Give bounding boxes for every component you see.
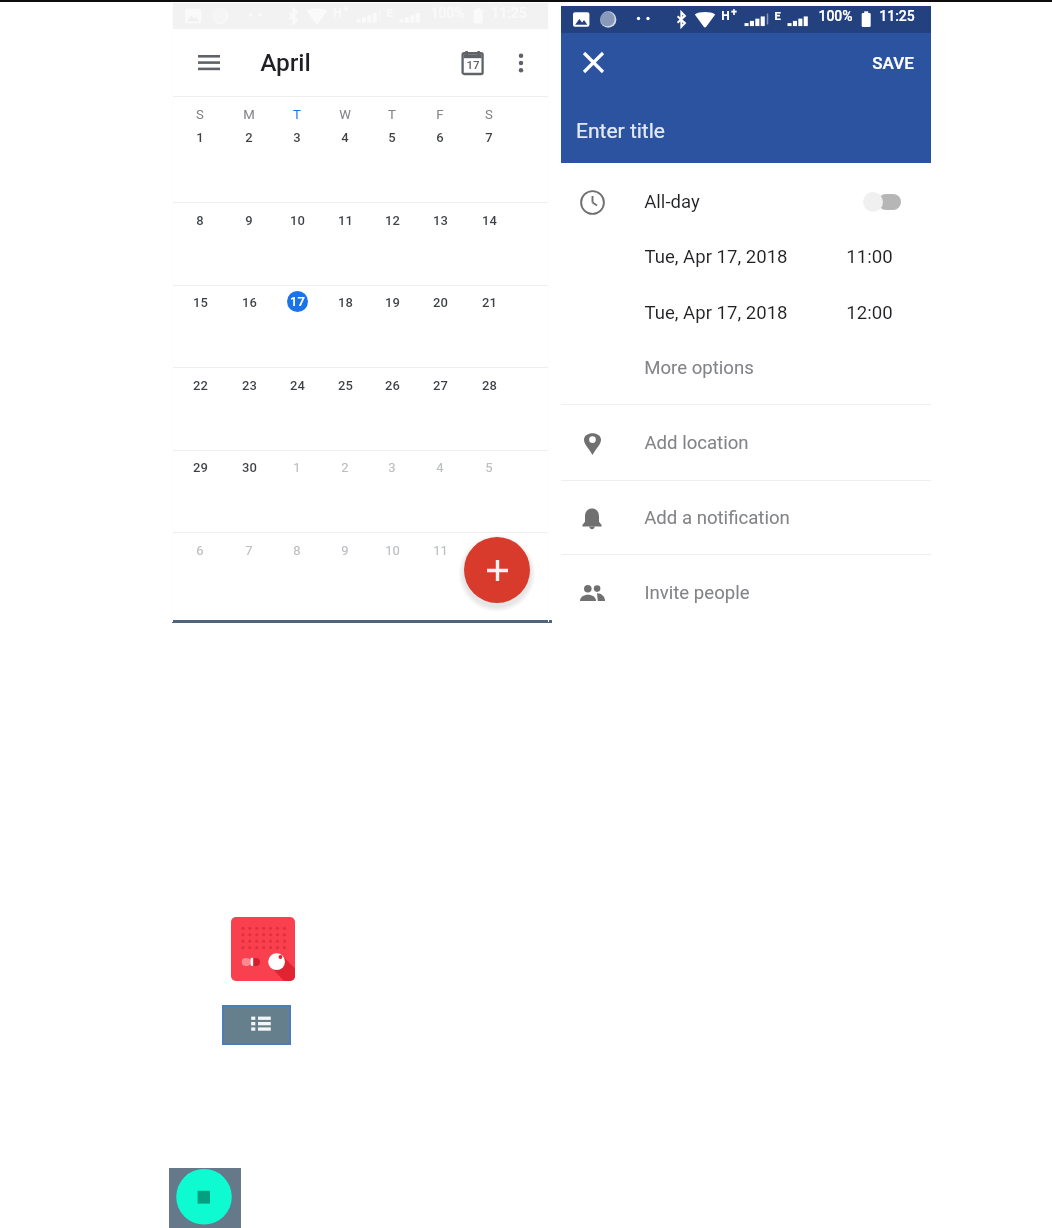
button[interactable]: 30 <box>225 460 273 475</box>
button[interactable]: 6 <box>176 543 224 558</box>
button[interactable]: 4 <box>416 460 464 475</box>
staticText: 7 <box>485 130 493 145</box>
button[interactable]: 21 <box>465 295 513 310</box>
button[interactable]: 18 <box>321 295 369 310</box>
staticText: T <box>293 107 301 122</box>
button[interactable]: 1 <box>273 460 321 475</box>
button[interactable]: 27 <box>416 378 464 393</box>
button[interactable]: SAVE <box>872 53 914 73</box>
button[interactable]: 19 <box>368 295 416 310</box>
staticText: Add location <box>644 432 749 454</box>
button[interactable]: List <box>222 1005 291 1045</box>
staticText: 22 <box>193 378 208 393</box>
button[interactable]: 5 <box>368 130 416 145</box>
staticText: 12:00 <box>846 302 893 324</box>
staticText: H <box>721 9 730 23</box>
button[interactable]: 14 <box>465 213 513 228</box>
staticText: H <box>333 6 342 20</box>
staticText: 5 <box>388 130 396 145</box>
staticText: 4 <box>436 460 444 475</box>
button[interactable]: 3 <box>368 460 416 475</box>
button[interactable]: 4 <box>321 130 369 145</box>
button[interactable]: 8 <box>176 213 224 228</box>
staticText: 16 <box>242 295 257 310</box>
button[interactable]: 16 <box>225 295 273 310</box>
button[interactable]: 24 <box>273 378 321 393</box>
staticText: 3 <box>293 130 301 145</box>
button[interactable]: 11 <box>321 213 369 228</box>
staticText: 1 <box>196 130 204 145</box>
staticText: 29 <box>193 460 208 475</box>
staticText: 18 <box>338 295 353 310</box>
staticText: 23 <box>242 378 257 393</box>
button[interactable]: 23 <box>225 378 273 393</box>
button[interactable]: 12 <box>368 213 416 228</box>
button[interactable]: Close <box>570 39 616 85</box>
button[interactable]: Go to today <box>452 42 494 84</box>
staticText: 6 <box>436 130 444 145</box>
button[interactable]: 7 <box>465 130 513 145</box>
staticText: Tue, Apr 17, 2018 <box>644 246 788 268</box>
button[interactable]: 20 <box>416 295 464 310</box>
staticText: 27 <box>433 378 448 393</box>
button[interactable]: Tue, Apr 17, 2018 <box>561 232 931 282</box>
staticText: 12 <box>385 213 400 228</box>
staticText: 1 <box>293 460 301 475</box>
button[interactable]: 28 <box>465 378 513 393</box>
staticText: 28 <box>482 378 497 393</box>
button[interactable]: 1 <box>176 130 224 145</box>
button[interactable]: Tue, Apr 17, 2018 <box>561 285 931 341</box>
button[interactable]: More options <box>561 341 931 395</box>
staticText: Tue, Apr 17, 2018 <box>644 302 788 324</box>
button[interactable]: App icon <box>231 917 295 981</box>
button[interactable]: 15 <box>176 295 224 310</box>
staticText: All-day <box>644 191 700 213</box>
button[interactable]: Add a notification <box>561 481 931 554</box>
button[interactable]: Add location <box>561 405 931 480</box>
staticText: 11:00 <box>846 246 893 268</box>
button[interactable]: 29 <box>176 460 224 475</box>
button[interactable]: 6 <box>416 130 464 145</box>
button[interactable]: More options <box>500 42 542 84</box>
button[interactable]: Invite people <box>561 555 931 631</box>
staticText: 9 <box>341 543 349 558</box>
staticText: M <box>243 107 255 122</box>
button[interactable]: 9 <box>321 543 369 558</box>
button[interactable]: 17 <box>287 291 308 312</box>
button[interactable]: Enter title <box>576 119 665 144</box>
button[interactable]: 10 <box>273 213 321 228</box>
button[interactable]: 8 <box>273 543 321 558</box>
staticText: 2 <box>341 460 349 475</box>
button[interactable]: All-day <box>561 172 931 232</box>
staticText: 19 <box>385 295 400 310</box>
button[interactable]: 10 <box>368 543 416 558</box>
button[interactable]: 2 <box>225 130 273 145</box>
button[interactable]: 5 <box>465 460 513 475</box>
staticText: 10 <box>385 543 400 558</box>
staticText: 20 <box>433 295 448 310</box>
button[interactable]: 26 <box>368 378 416 393</box>
button[interactable]: 9 <box>225 213 273 228</box>
staticText: 11 <box>433 543 448 558</box>
button[interactable]: Record <box>169 1168 241 1228</box>
button[interactable]: 11 <box>416 543 464 558</box>
button[interactable]: 22 <box>176 378 224 393</box>
staticText: E <box>774 10 781 23</box>
staticText: 10 <box>290 213 305 228</box>
button[interactable]: 13 <box>416 213 464 228</box>
staticText: 24 <box>290 378 305 393</box>
button[interactable]: Create event <box>464 537 530 603</box>
staticText: April <box>260 48 311 77</box>
staticText: T <box>388 107 396 122</box>
button[interactable]: Menu <box>188 42 230 84</box>
button[interactable]: 2 <box>321 460 369 475</box>
staticText: 26 <box>385 378 400 393</box>
button[interactable]: 3 <box>273 130 321 145</box>
button[interactable]: 25 <box>321 378 369 393</box>
staticText: 7 <box>245 543 253 558</box>
staticText: + <box>731 7 737 19</box>
button[interactable]: 7 <box>225 543 273 558</box>
